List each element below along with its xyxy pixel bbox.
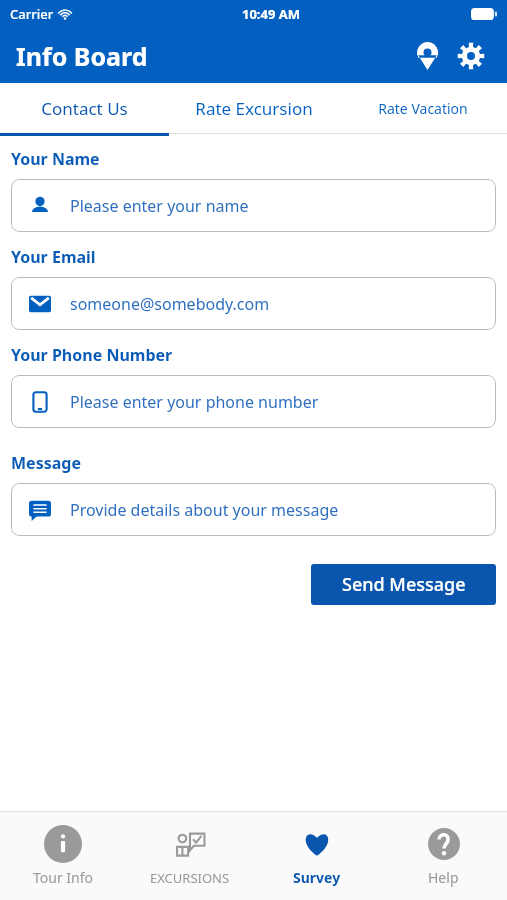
staticText: Contact Us — [41, 97, 128, 120]
staticText: Survey — [293, 868, 341, 887]
staticText: Send Message — [342, 572, 466, 597]
button[interactable]: Provide details about your message — [11, 483, 496, 536]
staticText: Help — [428, 868, 459, 887]
button[interactable]: Rate Excursion — [169, 83, 338, 133]
button[interactable]: Tour Info — [0, 812, 126, 900]
button[interactable]: Settings — [449, 34, 493, 78]
button[interactable]: Please enter your name — [11, 179, 496, 232]
staticText: Your Email — [11, 246, 96, 268]
staticText: Tour Info — [33, 868, 94, 887]
button[interactable]: Rate Vacation — [338, 83, 507, 133]
staticText: 10:49 AM — [242, 5, 301, 23]
staticText: Provide details about your message — [70, 499, 339, 521]
staticText: Rate Excursion — [195, 97, 313, 120]
button[interactable]: Send Message — [311, 564, 496, 605]
staticText: Please enter your name — [70, 195, 249, 217]
staticText: Info Board — [16, 39, 148, 73]
staticText: Rate Vacation — [378, 99, 468, 118]
staticText: Message — [11, 452, 81, 474]
button[interactable]: Location — [405, 34, 449, 78]
staticText: Your Name — [11, 148, 100, 170]
button[interactable]: Survey — [253, 812, 380, 900]
staticText: Please enter your phone number — [70, 391, 319, 413]
button[interactable]: Help — [380, 812, 507, 900]
button[interactable]: EXCURSIONS — [126, 812, 253, 900]
staticText: Your Phone Number — [11, 344, 173, 366]
button[interactable]: Contact Us — [0, 83, 169, 133]
staticText: Carrier — [10, 5, 54, 23]
staticText: someone@somebody.com — [70, 293, 270, 315]
button[interactable]: Please enter your phone number — [11, 375, 496, 428]
staticText: EXCURSIONS — [150, 869, 230, 887]
button[interactable]: someone@somebody.com — [11, 277, 496, 330]
